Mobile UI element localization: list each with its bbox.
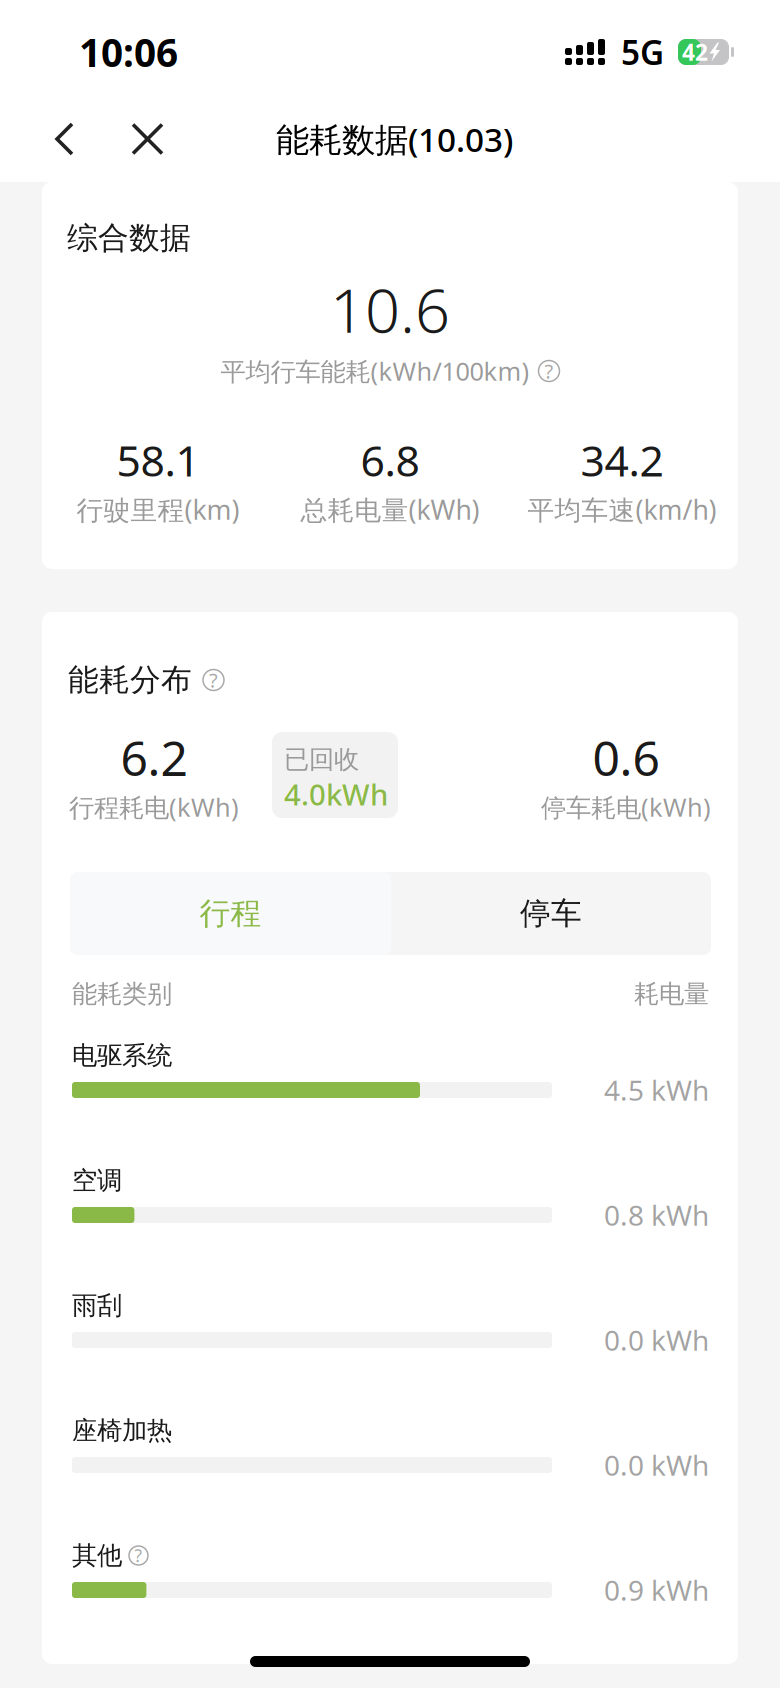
staticText: 总耗电量(kWh)	[300, 492, 479, 527]
staticText: 行程	[199, 895, 261, 932]
staticText: ?	[544, 358, 553, 384]
staticText: 电驱系统	[72, 1040, 172, 1071]
staticText: 停车	[520, 895, 582, 932]
staticText: 平均行车能耗(kWh/100km)	[220, 354, 529, 388]
button[interactable]: Back	[57, 96, 121, 182]
staticText: 34.2	[580, 432, 663, 488]
staticText: 行程耗电(kWh)	[69, 790, 239, 824]
staticText: ?	[134, 1544, 142, 1567]
staticText: 10.6	[330, 268, 450, 350]
staticText: 能耗数据(10.03)	[276, 117, 513, 161]
staticText: 停车耗电(kWh)	[541, 790, 711, 824]
staticText: ?	[209, 667, 218, 693]
staticText: 4.0kWh	[284, 774, 388, 813]
staticText: 耗电量	[634, 978, 709, 1009]
staticText: 能耗类别	[72, 978, 172, 1009]
staticText: 6.8	[360, 432, 419, 488]
staticText: 0.6	[592, 726, 659, 789]
staticText: 0.8 kWh	[604, 1196, 709, 1234]
staticText: 雨刮	[72, 1290, 122, 1321]
staticText: 5G	[621, 30, 664, 74]
staticText: 座椅加热	[72, 1415, 172, 1446]
staticText: 已回收	[284, 744, 359, 775]
button[interactable]: Close	[121, 96, 174, 182]
staticText: 综合数据	[67, 219, 191, 257]
staticText: 4.5 kWh	[604, 1071, 709, 1109]
button[interactable]: 停车	[391, 872, 711, 955]
staticText: 其他	[72, 1540, 122, 1571]
staticText: 0.0 kWh	[604, 1321, 709, 1359]
staticText: 0.9 kWh	[604, 1571, 709, 1609]
staticText: 行驶里程(km)	[76, 492, 239, 527]
staticText: 42	[682, 37, 708, 67]
staticText: 58.1	[116, 432, 199, 488]
staticText: 平均车速(km/h)	[527, 492, 716, 527]
button[interactable]: 行程	[70, 872, 391, 955]
staticText: 10:06	[79, 26, 178, 78]
staticText: 6.2	[120, 726, 187, 789]
staticText: 空调	[72, 1165, 122, 1196]
staticText: 能耗分布	[68, 661, 192, 699]
staticText: 0.0 kWh	[604, 1446, 709, 1484]
